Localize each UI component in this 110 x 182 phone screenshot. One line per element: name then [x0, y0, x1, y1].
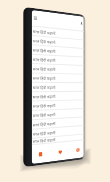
button[interactable]: सरल हिंदी कहानी: [32, 109, 84, 120]
button[interactable]: Account: [80, 22, 83, 25]
staticText: सरल हिंदी कहानी: [33, 85, 56, 90]
staticText: सरल हिंदी कहानी: [33, 38, 56, 45]
button[interactable]: सरल हिंदी कहानी: [32, 27, 84, 40]
button[interactable]: सरल हिंदी कहानी: [32, 55, 84, 66]
button[interactable]: सरल हिंदी कहानी: [32, 83, 84, 92]
staticText: सरल हिंदी कहानी: [33, 94, 56, 99]
staticText: सरल हिंदी कहानी: [33, 121, 56, 128]
staticText: सरल हिंदी कहानी: [33, 66, 56, 72]
staticText: सरल हिंदी कहानी: [33, 112, 56, 118]
button[interactable]: सरल हिंदी कहानी: [32, 92, 84, 102]
button[interactable]: सरल हिंदी कहानी: [32, 64, 84, 75]
button[interactable]: सरल हिंदी कहानी: [32, 73, 84, 83]
button[interactable]: Settings: [72, 143, 84, 157]
staticText: सरल हिंदी कहानी: [33, 130, 56, 137]
button[interactable]: Menu: [34, 16, 37, 20]
button[interactable]: Favorites: [54, 145, 66, 159]
staticText: सरल हिंदी कहानी: [33, 103, 56, 109]
button[interactable]: सरल हिंदी कहानी: [32, 126, 84, 139]
staticText: सरल हिंदी कहानी: [33, 57, 56, 63]
staticText: सरल हिंदी कहानी: [33, 47, 56, 54]
button[interactable]: सरल हिंदी कहानी: [32, 117, 84, 130]
staticText: सरल हिंदी कहानी: [33, 76, 56, 81]
button[interactable]: सरल हिंदी कहानी: [32, 45, 84, 57]
button[interactable]: Stories: [34, 147, 47, 162]
button[interactable]: सरल हिंदी कहानी: [32, 135, 84, 145]
button[interactable]: सरल हिंदी कहानी: [32, 36, 84, 49]
staticText: सरल हिंदी कहानी: [33, 137, 56, 144]
button[interactable]: सरल हिंदी कहानी: [32, 100, 84, 111]
staticText: सरल हिंदी कहानी: [33, 29, 56, 36]
